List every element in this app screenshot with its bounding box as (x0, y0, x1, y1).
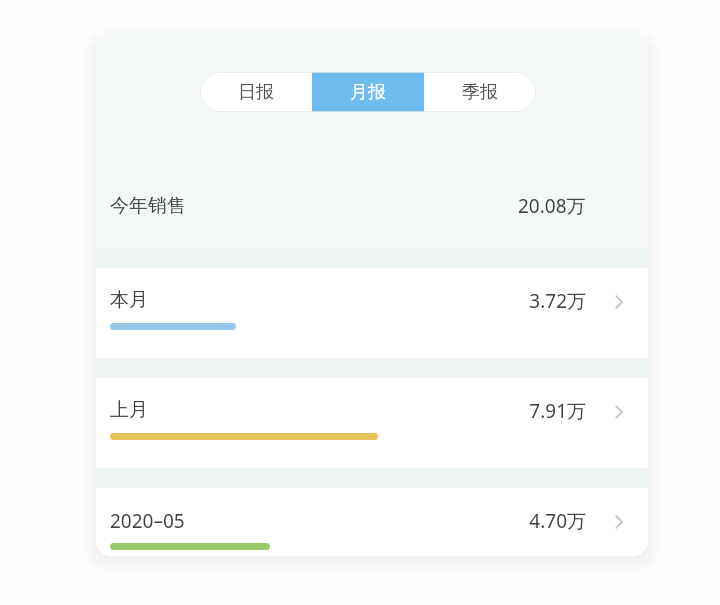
staticText: 日报 (238, 81, 274, 104)
button[interactable]: 本月 (96, 268, 648, 358)
button[interactable]: 上月 (96, 378, 648, 468)
button[interactable]: 2020–05 (96, 488, 648, 556)
button[interactable]: 今年销售 (96, 164, 648, 248)
staticText: 上月 (110, 398, 148, 422)
staticText: 月报 (350, 81, 386, 104)
staticText: 2020–05 (110, 508, 185, 534)
staticText: 本月 (110, 288, 148, 312)
button[interactable]: 月报 (312, 72, 424, 112)
button[interactable]: 查看详情 (608, 401, 630, 423)
staticText: 3.72万 (426, 288, 586, 314)
staticText: 今年销售 (110, 194, 186, 218)
button[interactable]: 查看详情 (608, 291, 630, 313)
staticText: 4.70万 (426, 508, 586, 534)
button[interactable]: 日报 (200, 72, 312, 112)
staticText: 7.91万 (426, 398, 586, 424)
staticText: 季报 (462, 81, 498, 104)
button[interactable]: 查看详情 (608, 511, 630, 533)
staticText: 20.08万 (518, 193, 586, 219)
button[interactable]: 季报 (424, 72, 536, 112)
